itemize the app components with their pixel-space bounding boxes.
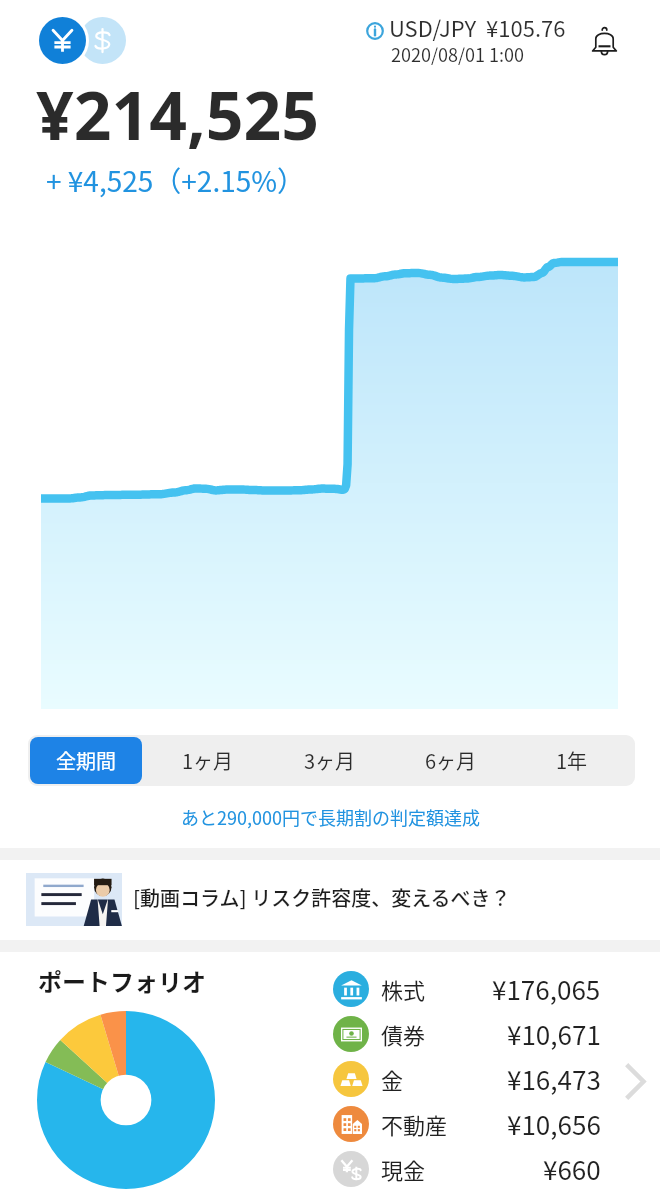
button[interactable]: 1年 bbox=[516, 737, 627, 784]
staticText: USD/JPY ¥105.76 bbox=[389, 11, 566, 43]
staticText: 1ヶ月 bbox=[182, 746, 234, 775]
button[interactable]: あと290,000円で長期割の判定額達成 bbox=[0, 798, 660, 836]
button[interactable]: 債券 bbox=[333, 1012, 601, 1056]
staticText: 3ヶ月 bbox=[304, 746, 356, 775]
staticText: あと290,000円で長期割の判定額達成 bbox=[181, 804, 480, 830]
staticText: ¥660 bbox=[543, 1150, 601, 1188]
staticText: ポートフォリオ bbox=[38, 963, 206, 998]
staticText: ¥176,065 bbox=[492, 970, 601, 1008]
button[interactable]: 1ヶ月 bbox=[152, 737, 264, 784]
button[interactable]: [動画コラム] リスク許容度、変えるべき？ bbox=[0, 860, 660, 940]
button[interactable]: See portfolio details bbox=[612, 1055, 660, 1103]
button[interactable]: 全期間 bbox=[30, 737, 142, 784]
button[interactable]: Notifications bbox=[582, 18, 626, 62]
button[interactable]: 金 bbox=[333, 1057, 601, 1101]
staticText: 6ヶ月 bbox=[425, 746, 477, 775]
button[interactable]: Yen currency bbox=[36, 14, 89, 67]
staticText: 株式 bbox=[381, 973, 426, 1005]
staticText: [動画コラム] リスク許容度、変えるべき？ bbox=[133, 883, 511, 912]
staticText: 2020/08/01 1:00 bbox=[391, 41, 525, 67]
staticText: ¥10,656 bbox=[507, 1105, 601, 1143]
button[interactable]: 6ヶ月 bbox=[395, 737, 506, 784]
staticText: 全期間 bbox=[56, 746, 116, 775]
staticText: 金 bbox=[381, 1063, 404, 1095]
button[interactable]: Dollar currency bbox=[79, 17, 126, 64]
staticText: ¥214,525 bbox=[36, 69, 320, 159]
staticText: 現金 bbox=[381, 1153, 426, 1185]
staticText: 1年 bbox=[556, 746, 588, 775]
staticText: ¥16,473 bbox=[507, 1060, 601, 1098]
button[interactable]: 3ヶ月 bbox=[274, 737, 385, 784]
button[interactable]: 不動産 bbox=[333, 1102, 601, 1146]
staticText: ¥10,671 bbox=[507, 1015, 601, 1053]
staticText: + ¥4,525（+2.15%） bbox=[46, 160, 306, 201]
button[interactable]: 現金 bbox=[333, 1147, 601, 1191]
staticText: 不動産 bbox=[381, 1108, 448, 1140]
button[interactable]: 株式 bbox=[333, 967, 601, 1011]
staticText: 債券 bbox=[381, 1018, 426, 1050]
